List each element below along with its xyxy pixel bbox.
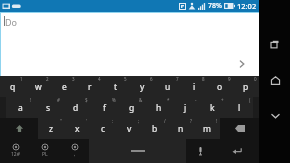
- staticText: h: [156, 102, 162, 114]
- staticText: PL: [42, 151, 48, 158]
- button[interactable]: 1: [0, 76, 25, 97]
- staticText: !: [30, 97, 32, 103]
- staticText: r: [88, 81, 92, 93]
- button[interactable]: 4: [77, 76, 103, 97]
- staticText: +: [221, 97, 224, 103]
- button[interactable]: &: [118, 97, 145, 118]
- staticText: b: [152, 123, 158, 135]
- button[interactable]: #: [34, 97, 62, 118]
- button[interactable]: Backspace: [220, 118, 259, 139]
- button[interactable]: %: [90, 97, 118, 118]
- button[interactable]: Language: [30, 139, 60, 163]
- staticText: %: [112, 97, 116, 103]
- button[interactable]: Settings: [60, 139, 89, 163]
- button[interactable]: Enter: [215, 139, 259, 163]
- button[interactable]: :: [90, 118, 116, 139]
- staticText: 3: [72, 76, 75, 82]
- staticText: ": [60, 118, 62, 124]
- button[interactable]: 2: [25, 76, 51, 97]
- staticText: k: [210, 102, 215, 114]
- button[interactable]: ': [64, 118, 90, 139]
- staticText: a: [18, 102, 23, 114]
- staticText: o: [217, 81, 223, 93]
- button[interactable]: (: [226, 97, 253, 118]
- staticText: i: [193, 81, 196, 93]
- button[interactable]: $: [62, 97, 90, 118]
- staticText: 6: [150, 76, 153, 82]
- staticText: d: [73, 102, 79, 114]
- button[interactable]: Space: [89, 139, 186, 163]
- button[interactable]: Hide keyboard: [261, 102, 289, 130]
- staticText: m: [203, 123, 211, 135]
- staticText: ?: [190, 118, 192, 124]
- staticText: 12:02: [237, 1, 257, 11]
- staticText: 78%: [208, 1, 222, 11]
- staticText: &: [139, 97, 143, 103]
- staticText: w: [35, 81, 42, 93]
- staticText: p: [243, 81, 249, 93]
- button[interactable]: 9: [207, 76, 233, 97]
- staticText: c: [101, 123, 106, 135]
- staticText: y: [140, 81, 145, 93]
- staticText: 0: [254, 76, 257, 82]
- button[interactable]: -: [172, 97, 199, 118]
- staticText: q: [10, 81, 16, 93]
- button[interactable]: Home: [261, 66, 289, 94]
- staticText: l: [238, 102, 241, 114]
- staticText: $: [85, 97, 88, 103]
- staticText: 7: [176, 76, 179, 82]
- button[interactable]: !: [194, 118, 220, 139]
- staticText: z: [49, 123, 53, 135]
- staticText: (: [249, 97, 251, 103]
- staticText: 12#: [11, 151, 20, 158]
- staticText: x: [75, 123, 80, 135]
- button[interactable]: [0, 118, 38, 139]
- button[interactable]: Symbols: [0, 139, 30, 163]
- button[interactable]: Next: [235, 57, 249, 71]
- button[interactable]: Recent apps: [261, 30, 289, 58]
- button[interactable]: Do: [1, 13, 259, 76]
- button[interactable]: 7: [155, 76, 181, 97]
- button[interactable]: ?: [168, 118, 194, 139]
- staticText: 9: [228, 76, 231, 82]
- button[interactable]: /: [142, 118, 168, 139]
- staticText: /: [164, 118, 166, 124]
- button[interactable]: 5: [103, 76, 129, 97]
- staticText: v: [127, 123, 132, 135]
- staticText: ,: [74, 151, 76, 158]
- staticText: ;: [138, 118, 140, 124]
- button[interactable]: +: [199, 97, 226, 118]
- staticText: g: [129, 102, 135, 114]
- button[interactable]: 6: [129, 76, 155, 97]
- staticText: 2: [46, 76, 49, 82]
- staticText: 8: [202, 76, 205, 82]
- button[interactable]: *: [145, 97, 172, 118]
- staticText: :: [112, 118, 114, 124]
- staticText: 1: [20, 76, 23, 82]
- staticText: ': [86, 118, 88, 124]
- staticText: #: [57, 97, 60, 103]
- staticText: 4: [98, 76, 101, 82]
- staticText: 5: [124, 76, 127, 82]
- staticText: s: [46, 102, 51, 114]
- button[interactable]: ;: [116, 118, 142, 139]
- staticText: u: [165, 81, 171, 93]
- staticText: !: [216, 118, 218, 124]
- staticText: t: [114, 81, 118, 93]
- staticText: -: [195, 97, 197, 103]
- staticText: Do: [5, 16, 18, 28]
- button[interactable]: 3: [51, 76, 77, 97]
- staticText: *: [167, 97, 170, 103]
- button[interactable]: !: [6, 97, 34, 118]
- staticText: n: [178, 123, 184, 135]
- button[interactable]: 0: [233, 76, 259, 97]
- button[interactable]: ": [38, 118, 64, 139]
- staticText: e: [62, 81, 67, 93]
- button[interactable]: Voice input: [186, 139, 215, 163]
- staticText: j: [184, 102, 187, 114]
- button[interactable]: 8: [181, 76, 207, 97]
- staticText: f: [103, 102, 106, 114]
